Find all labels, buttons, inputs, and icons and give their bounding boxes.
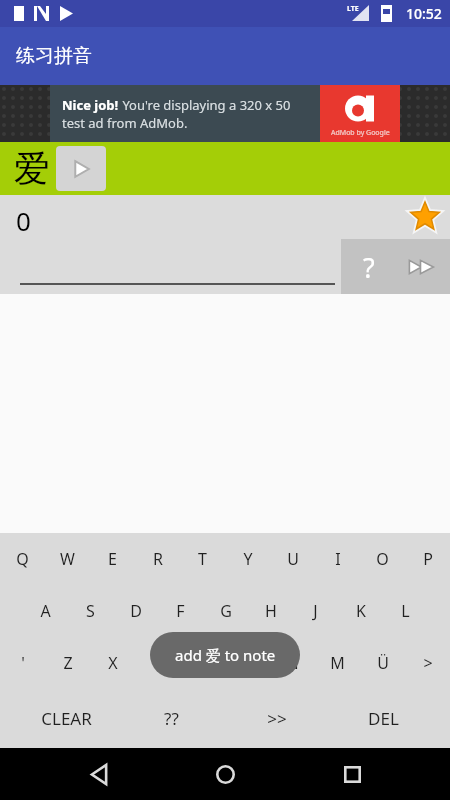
button[interactable]: O: [360, 533, 405, 585]
button[interactable]: C: [135, 637, 180, 689]
button[interactable]: J: [293, 585, 338, 637]
button[interactable]: I: [315, 533, 360, 585]
staticText: AdMob by Google: [331, 128, 390, 138]
staticText: You're displaying a 320 x 50: [119, 96, 291, 114]
staticText: M: [330, 652, 345, 674]
button[interactable]: S: [68, 585, 113, 637]
staticText: Y: [243, 548, 253, 570]
button[interactable]: Ü: [360, 637, 405, 689]
staticText: Q: [16, 548, 29, 570]
button[interactable]: Recents: [324, 748, 380, 800]
button[interactable]: V: [180, 637, 225, 689]
staticText: Nice job!: [62, 96, 119, 114]
staticText: S: [86, 600, 95, 622]
button[interactable]: ': [0, 637, 45, 689]
staticText: ': [21, 652, 25, 674]
staticText: C: [152, 652, 163, 674]
staticText: I: [335, 548, 341, 570]
button[interactable]: U: [270, 533, 315, 585]
staticText: H: [265, 600, 277, 622]
staticText: ??: [164, 707, 179, 730]
button[interactable]: Next: [398, 243, 446, 291]
button[interactable]: F: [158, 585, 203, 637]
staticText: 10:52: [406, 4, 442, 23]
staticText: >>: [267, 707, 287, 730]
button[interactable]: D: [113, 585, 158, 637]
staticText: ?: [363, 249, 375, 286]
button[interactable]: P: [405, 533, 450, 585]
staticText: O: [376, 548, 389, 570]
button[interactable]: H: [248, 585, 293, 637]
button[interactable]: R: [135, 533, 180, 585]
button[interactable]: ??: [119, 689, 224, 748]
button[interactable]: L: [383, 585, 428, 637]
staticText: U: [287, 548, 299, 570]
button[interactable]: Hint: [345, 243, 393, 291]
staticText: B: [242, 652, 253, 674]
staticText: add 爱 to note: [175, 645, 276, 665]
staticText: 0: [16, 203, 31, 238]
button[interactable]: T: [180, 533, 225, 585]
button[interactable]: X: [90, 637, 135, 689]
staticText: DEL: [368, 707, 399, 730]
button[interactable]: Z: [45, 637, 90, 689]
button[interactable]: Home: [197, 748, 253, 800]
staticText: P: [423, 548, 433, 570]
staticText: L: [401, 600, 410, 622]
button[interactable]: W: [45, 533, 90, 585]
button[interactable]: G: [203, 585, 248, 637]
button[interactable]: A: [22, 585, 68, 637]
staticText: >: [423, 652, 433, 674]
staticText: K: [356, 600, 366, 622]
staticText: G: [220, 600, 232, 622]
button[interactable]: 练习拼音: [0, 27, 450, 85]
staticText: V: [198, 652, 208, 674]
button[interactable]: Q: [0, 533, 45, 585]
button[interactable]: E: [90, 533, 135, 585]
button[interactable]: Nice job!: [0, 85, 450, 142]
button[interactable]: M: [315, 637, 360, 689]
staticText: J: [313, 600, 318, 622]
staticText: Z: [63, 652, 73, 674]
staticText: W: [60, 548, 75, 570]
button[interactable]: N: [270, 637, 315, 689]
button[interactable]: CLEAR: [14, 689, 119, 748]
button[interactable]: Favourite: [408, 200, 442, 234]
staticText: test ad from AdMob.: [62, 114, 188, 132]
button[interactable]: >: [405, 637, 450, 689]
staticText: X: [108, 652, 118, 674]
button[interactable]: Y: [225, 533, 270, 585]
staticText: N: [286, 652, 299, 674]
staticText: 练习拼音: [16, 44, 92, 68]
staticText: E: [108, 548, 117, 570]
staticText: R: [153, 548, 163, 570]
button[interactable]: DEL: [330, 689, 436, 748]
staticText: Ü: [377, 652, 389, 674]
button[interactable]: K: [338, 585, 383, 637]
staticText: F: [176, 600, 185, 622]
staticText: 爱: [14, 146, 50, 191]
button[interactable]: >>: [224, 689, 330, 748]
staticText: CLEAR: [41, 707, 92, 730]
staticText: A: [40, 600, 51, 622]
button[interactable]: B: [225, 637, 270, 689]
button[interactable]: Play pronunciation: [56, 146, 106, 191]
staticText: LTE: [347, 4, 359, 14]
button[interactable]: Back: [71, 748, 127, 800]
staticText: D: [130, 600, 142, 622]
staticText: T: [198, 548, 207, 570]
